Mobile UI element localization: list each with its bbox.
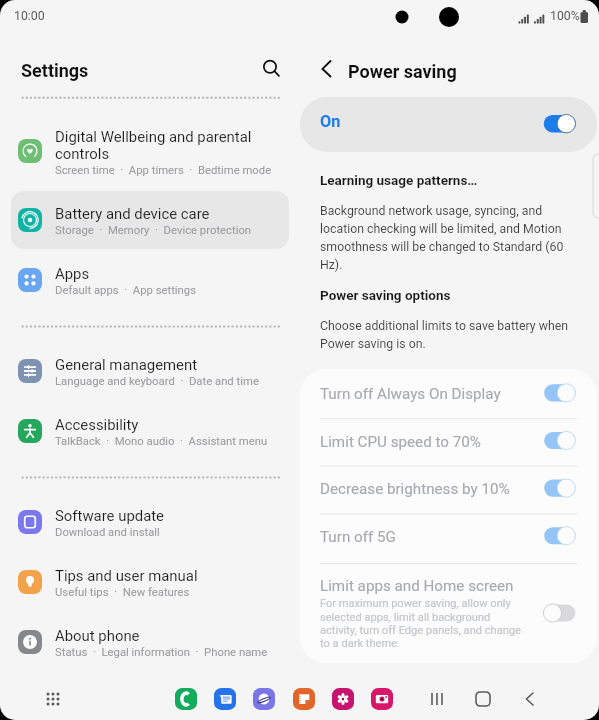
button[interactable] [11,346,289,394]
button[interactable]: internet [253,688,275,710]
staticText: Storage · Memory · Device protection [55,224,300,237]
button[interactable] [11,406,289,454]
button[interactable] [300,417,597,465]
staticText: Choose additional limits to save battery… [320,319,572,351]
staticText: TalkBack · Mono audio · Assistant menu [55,435,300,448]
button[interactable] [300,512,597,560]
button[interactable]: phone [175,688,197,710]
staticText: Apps [55,265,290,282]
staticText: Default apps · App settings [55,284,300,297]
staticText: For maximum power saving, allow only sel… [320,597,526,649]
staticText: On [320,112,341,131]
button[interactable]: messages [214,688,236,710]
button[interactable] [11,617,289,665]
staticText: Limit CPU speed to 70% [320,433,481,451]
staticText: Useful tips · New features [55,586,300,599]
staticText: Learning usage patterns… [320,172,478,188]
button[interactable]: Back [518,687,542,711]
button[interactable] [300,564,597,662]
button[interactable]: camera [371,688,393,710]
staticText: Status · Legal information · Phone name [55,646,300,659]
staticText: Language and keyboard · Date and time [55,375,300,388]
staticText: Background network usage, syncing, and l… [320,204,572,272]
staticText: Power saving [348,61,457,82]
button[interactable] [11,118,289,176]
staticText: Turn off Always On Display [320,385,501,403]
staticText: Download and install [55,526,300,539]
staticText: 10:00 [14,9,45,23]
staticText: Limit apps and Home screen [320,577,514,595]
staticText: Accessibility [55,416,290,433]
staticText: Battery and device care [55,205,290,222]
button[interactable]: On [300,97,597,152]
staticText: Digital Wellbeing and parental controls [55,128,290,162]
button[interactable]: Home [471,687,495,711]
button[interactable]: Recents [425,687,449,711]
button[interactable] [11,195,289,243]
staticText: Turn off 5G [320,528,396,546]
staticText: General management [55,356,290,373]
button[interactable] [300,369,597,417]
staticText: Screen time · App timers · Bedtime mode [55,164,300,177]
button[interactable]: Back [314,52,344,82]
staticText: 100% [550,9,580,23]
staticText: About phone [55,627,290,644]
staticText: Decrease brightness by 10% [320,480,510,498]
button[interactable] [11,255,289,303]
staticText: Settings [21,60,89,81]
button[interactable]: Search [256,51,285,80]
button[interactable] [300,464,597,512]
staticText: Tips and user manual [55,567,290,584]
button[interactable]: notes [293,688,315,710]
button[interactable]: gallery [332,688,354,710]
button[interactable]: Apps [41,687,65,711]
button[interactable] [11,557,289,605]
staticText: Software update [55,507,290,524]
button[interactable] [11,497,289,545]
staticText: Power saving options [320,287,451,303]
